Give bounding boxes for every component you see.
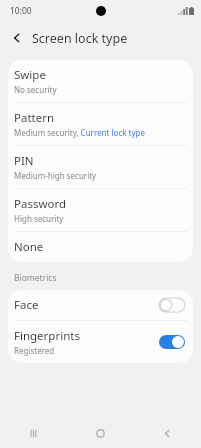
staticText: PIN: [14, 153, 34, 169]
button[interactable]: Pattern: [8, 103, 193, 145]
button[interactable]: Recents: [0, 418, 67, 448]
button[interactable]: Off: [159, 298, 185, 312]
button[interactable]: Face: [8, 290, 193, 320]
staticText: None: [14, 239, 44, 255]
staticText: Password: [14, 196, 67, 212]
staticText: No security: [14, 84, 57, 95]
button[interactable]: Back: [134, 418, 201, 448]
button[interactable]: Back: [6, 27, 28, 49]
button[interactable]: None: [8, 232, 193, 262]
staticText: Face: [14, 297, 39, 313]
staticText: Pattern: [14, 110, 55, 126]
staticText: 10:00: [10, 5, 32, 17]
button[interactable]: PIN: [8, 146, 193, 188]
staticText: Registered: [14, 345, 55, 356]
staticText: Fingerprints: [14, 328, 80, 344]
staticText: Medium-high security: [14, 170, 97, 181]
staticText: Screen lock type: [32, 30, 128, 47]
button[interactable]: Home: [67, 418, 134, 448]
button[interactable]: Password: [8, 189, 193, 231]
button[interactable]: Swipe: [8, 60, 193, 102]
button[interactable]: Fingerprints: [8, 321, 193, 363]
staticText: Swipe: [14, 67, 46, 83]
staticText: Biometrics: [14, 272, 57, 284]
staticText: Medium security, Current lock type: [14, 127, 145, 138]
staticText: High security: [14, 213, 64, 224]
button[interactable]: On: [159, 335, 185, 349]
